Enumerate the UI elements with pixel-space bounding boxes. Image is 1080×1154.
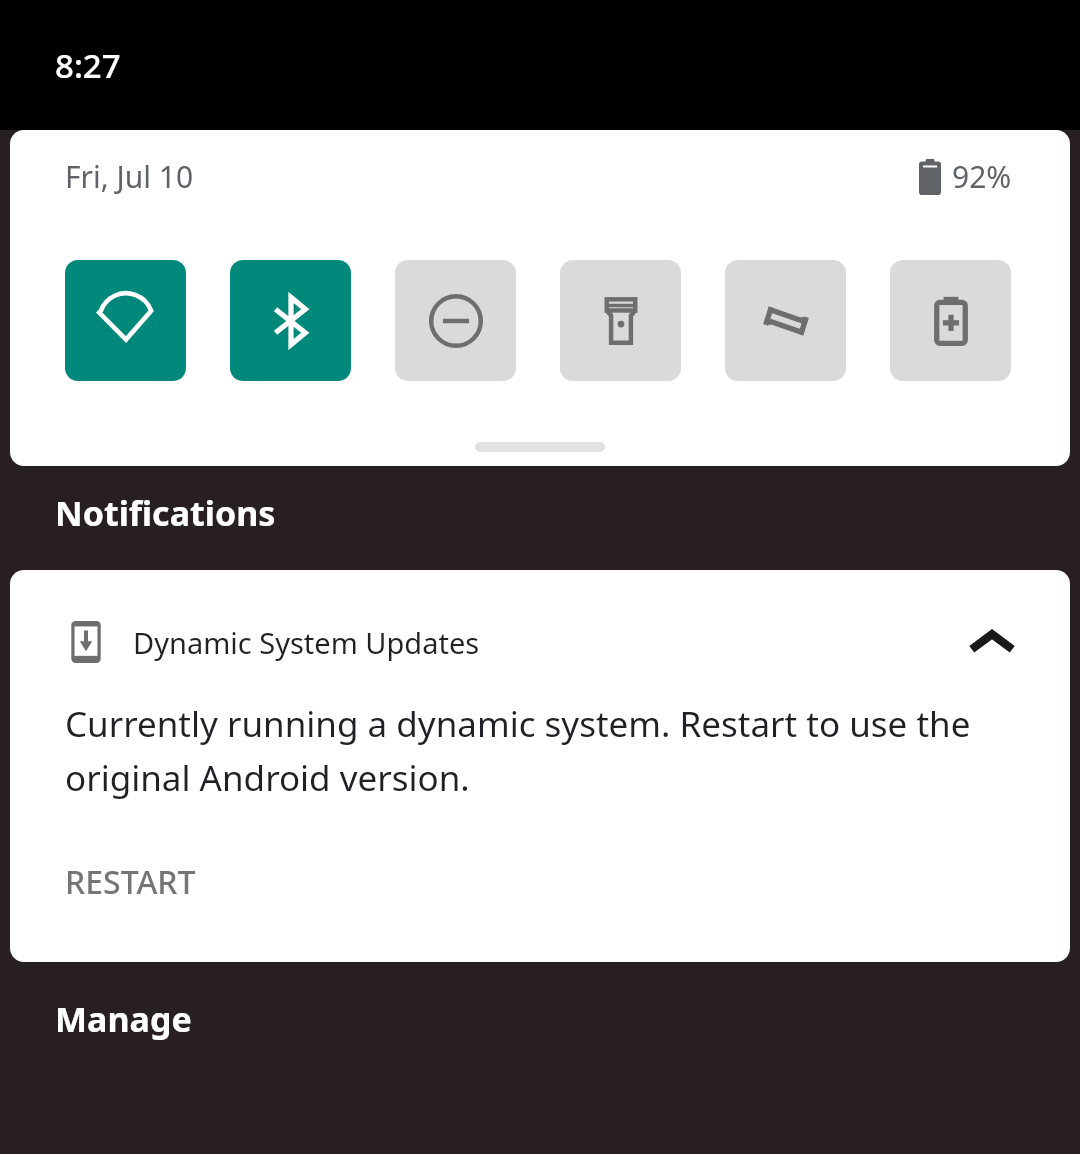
button[interactable]: Battery Saver	[890, 260, 1011, 381]
button[interactable]: Collapse	[964, 614, 1020, 670]
staticText: Fri, Jul 10	[65, 156, 194, 197]
staticText: Notifications	[55, 490, 276, 536]
button[interactable]: Do not disturb	[395, 260, 516, 381]
staticText: Dynamic System Updates	[133, 623, 480, 662]
button[interactable]: Dynamic System Updates	[10, 570, 1070, 962]
button[interactable]: Auto-rotate	[725, 260, 846, 381]
button[interactable]: RESTART	[40, 854, 221, 910]
button[interactable]: Bluetooth	[230, 260, 351, 381]
button[interactable]: Flashlight	[560, 260, 681, 381]
staticText: 8:27	[55, 43, 121, 88]
button[interactable]: Expand quick settings	[475, 442, 605, 452]
staticText: Currently running a dynamic system. Rest…	[65, 700, 1010, 802]
staticText: 92%	[952, 156, 1012, 197]
button[interactable]: Wi-Fi	[65, 260, 186, 381]
button[interactable]: Manage	[0, 990, 192, 1048]
